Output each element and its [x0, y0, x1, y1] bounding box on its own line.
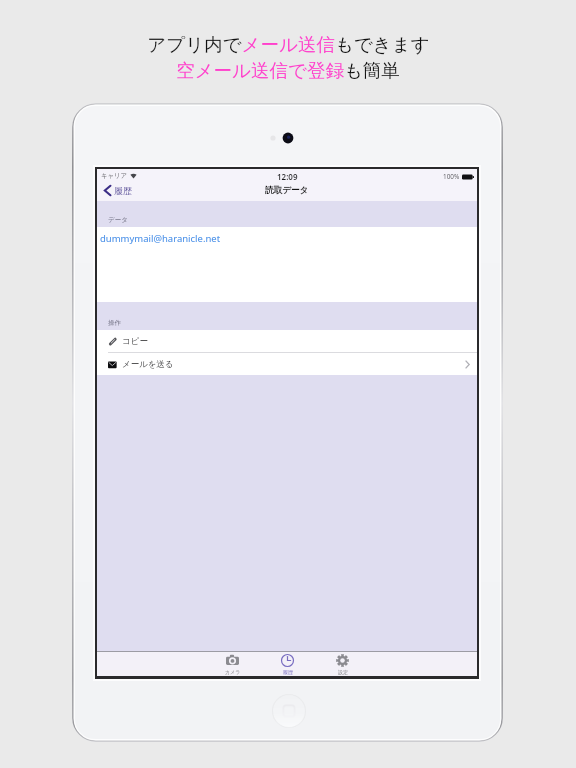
staticText: コピー	[122, 336, 148, 347]
staticText: 操作	[108, 319, 121, 327]
button[interactable]: カメラ	[205, 651, 260, 676]
staticText: 空メール送信で登録も簡単	[176, 59, 400, 82]
button[interactable]: 履歴	[260, 651, 315, 676]
staticText: 設定	[338, 669, 348, 675]
button[interactable]: dummymail@haranicle.net	[97, 227, 477, 302]
staticText: dummymail@haranicle.net	[100, 232, 221, 245]
staticText: 100%	[443, 172, 460, 181]
staticText: メールを送る	[122, 359, 174, 370]
staticText: キャリア	[101, 172, 128, 180]
button[interactable]: 設定	[315, 651, 370, 676]
staticText: アプリ内でメール送信もできます	[147, 33, 430, 56]
button[interactable]: メールを送る	[97, 353, 477, 375]
staticText: データ	[108, 216, 128, 224]
staticText: カメラ	[225, 669, 241, 675]
button[interactable]: Back to 履歴	[97, 183, 138, 201]
staticText: 読取データ	[265, 185, 309, 196]
staticText: 履歴	[283, 669, 293, 675]
staticText: 履歴	[114, 185, 132, 196]
staticText: 12:09	[277, 171, 298, 182]
button[interactable]: コピー	[97, 330, 477, 352]
